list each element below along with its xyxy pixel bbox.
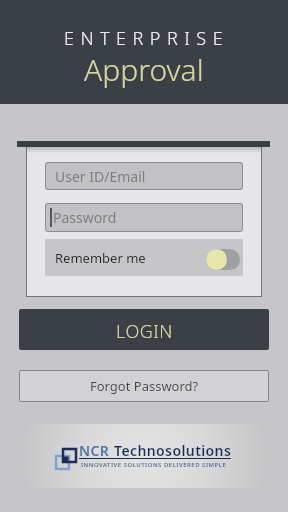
- staticText: LOGIN: [116, 319, 173, 344]
- staticText: Approval: [84, 49, 204, 90]
- button[interactable]: Forgot Password?: [19, 370, 269, 402]
- staticText: INNOVATIVE SOLUTIONS DELIVERED SIMPLE: [81, 461, 227, 469]
- staticText: Technosolutions: [114, 441, 232, 460]
- button[interactable]: Remember me: [45, 239, 243, 276]
- staticText: Forgot Password?: [90, 377, 199, 395]
- staticText: Password: [53, 208, 117, 227]
- button[interactable]: LOGIN: [19, 309, 269, 350]
- button[interactable]: Password: [45, 203, 243, 232]
- staticText: Remember me: [55, 249, 146, 267]
- staticText: NCR: [79, 441, 114, 460]
- staticText: User ID/Email: [55, 167, 146, 186]
- button[interactable]: User ID/Email: [45, 162, 243, 190]
- staticText: ENTERPRISE: [64, 26, 230, 51]
